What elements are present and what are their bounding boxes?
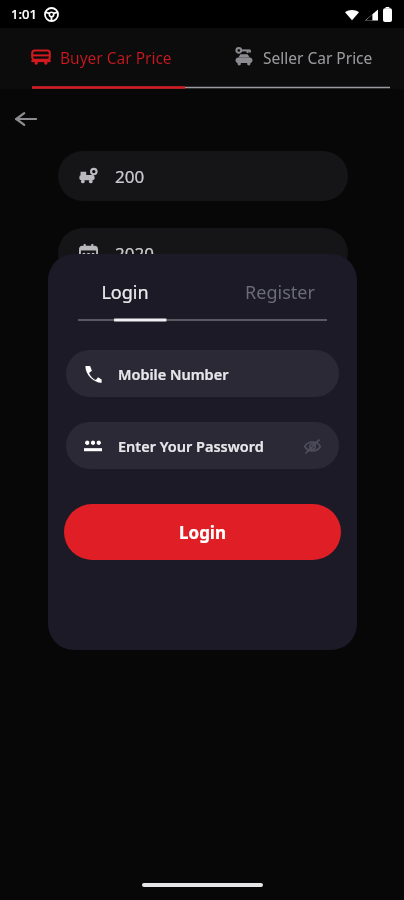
staticText: Register xyxy=(245,280,315,305)
staticText: 2020 xyxy=(115,242,154,265)
button[interactable]: Show password xyxy=(301,435,323,457)
button[interactable]: Register xyxy=(202,280,357,305)
staticText: 200 xyxy=(115,165,145,188)
staticText: 1:01 xyxy=(11,5,37,23)
staticText: Seller Car Price xyxy=(263,47,373,68)
button[interactable]: Back xyxy=(8,101,44,137)
button[interactable]: 200 xyxy=(58,151,348,201)
button[interactable]: Enter Your Password xyxy=(66,422,339,469)
staticText: Mobile Number xyxy=(118,364,229,384)
button[interactable]: 2020 xyxy=(58,228,348,278)
button[interactable]: Login xyxy=(64,504,341,560)
staticText: Login xyxy=(179,521,227,544)
button[interactable]: Mobile Number xyxy=(66,350,339,397)
button[interactable]: Login xyxy=(48,280,202,305)
staticText: Login xyxy=(101,280,149,305)
staticText: Enter Your Password xyxy=(118,436,264,456)
button[interactable]: Seller Car Price xyxy=(202,28,404,86)
button[interactable]: Buyer Car Price xyxy=(0,28,202,86)
staticText: Buyer Car Price xyxy=(60,47,172,68)
